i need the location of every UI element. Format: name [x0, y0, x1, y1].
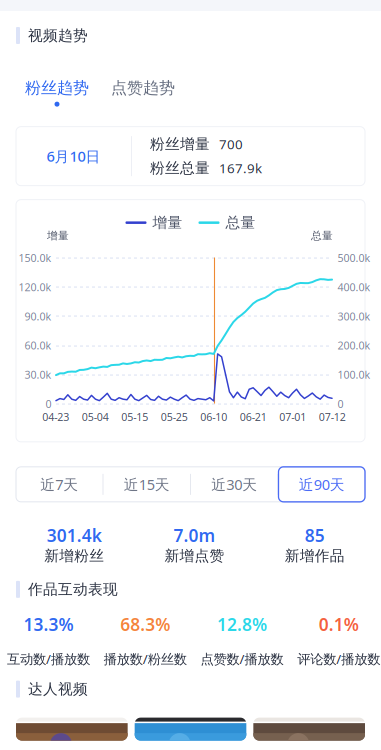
staticText: 点赞趋势	[111, 78, 175, 98]
button[interactable]: 近30天	[191, 467, 277, 502]
staticText: 新增粉丝	[44, 547, 104, 565]
staticText: 粉丝增量	[150, 135, 210, 153]
staticText: 粉丝趋势	[25, 78, 89, 98]
staticText: 互动数/播放数	[7, 650, 90, 668]
staticText: 400.0k	[337, 280, 370, 294]
staticText: 增量	[152, 214, 182, 232]
staticText: 粉丝总量	[150, 159, 210, 177]
staticText: 700	[219, 135, 243, 153]
button[interactable]: 近90天	[278, 467, 365, 502]
staticText: 13.3%	[23, 613, 73, 636]
staticText: 达人视频	[28, 680, 88, 698]
button[interactable]: 粉丝趋势	[25, 78, 89, 107]
staticText: 07-12	[319, 410, 346, 424]
staticText: 增量	[47, 229, 69, 242]
staticText: 300.0k	[337, 309, 370, 323]
staticText: 总量	[225, 214, 255, 232]
staticText: 60.0k	[24, 338, 51, 353]
staticText: 150.0k	[18, 251, 51, 265]
staticText: 近7天	[40, 475, 78, 494]
button[interactable]: 视频	[16, 718, 128, 741]
staticText: 0.1%	[319, 613, 359, 636]
button[interactable]: 视频	[135, 718, 246, 741]
staticText: 85	[305, 524, 325, 547]
staticText: 近90天	[299, 475, 345, 494]
staticText: 总量	[311, 229, 333, 242]
button[interactable]: 近15天	[103, 467, 190, 502]
staticText: 6月10日	[46, 146, 100, 166]
staticText: 近15天	[124, 475, 170, 494]
staticText: 07-01	[279, 410, 306, 424]
button[interactable]: 点赞趋势	[111, 78, 175, 107]
staticText: 12.8%	[217, 613, 267, 636]
staticText: 30.0k	[24, 368, 51, 382]
staticText: 作品互动表现	[28, 580, 118, 598]
staticText: 0	[45, 397, 51, 411]
staticText: 播放数/粉丝数	[104, 650, 187, 668]
staticText: 新增作品	[285, 547, 345, 565]
staticText: 120.0k	[18, 280, 51, 294]
staticText: 点赞数/播放数	[200, 650, 283, 668]
staticText: 301.4k	[47, 524, 102, 547]
staticText: 200.0k	[337, 338, 370, 353]
staticText: 05-04	[82, 410, 109, 424]
staticText: 167.9k	[219, 159, 262, 177]
staticText: 评论数/播放数	[297, 650, 380, 668]
staticText: 新增点赞	[164, 547, 224, 565]
button[interactable]: 近7天	[16, 467, 102, 502]
staticText: 68.3%	[120, 613, 170, 636]
button[interactable]: 视频	[253, 718, 365, 741]
staticText: 05-15	[121, 410, 148, 424]
staticText: 06-10	[200, 410, 227, 424]
staticText: 近30天	[211, 475, 257, 494]
staticText: 05-25	[161, 410, 188, 424]
staticText: 06-21	[240, 410, 267, 424]
staticText: 04-23	[42, 410, 69, 424]
staticText: 0	[337, 397, 343, 411]
staticText: 500.0k	[337, 251, 370, 265]
staticText: 90.0k	[24, 309, 51, 323]
staticText: 100.0k	[337, 368, 370, 382]
staticText: 视频趋势	[28, 26, 88, 44]
staticText: 7.0m	[173, 524, 215, 547]
